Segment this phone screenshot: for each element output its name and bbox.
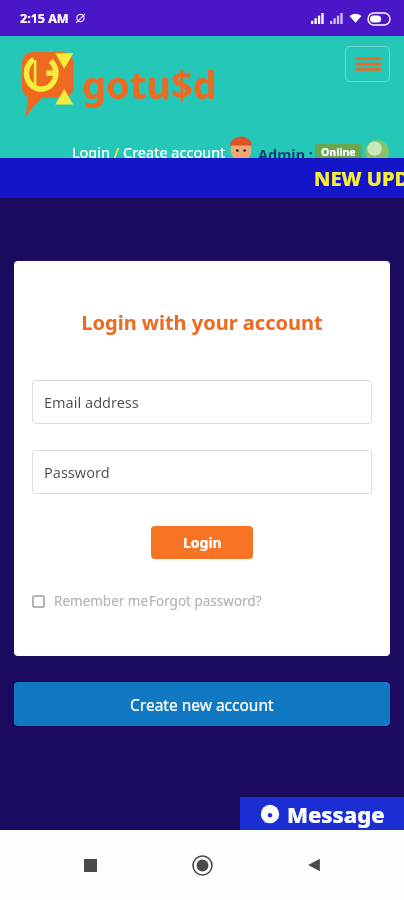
staticText: Message	[287, 799, 385, 829]
staticText: Remember me	[54, 592, 149, 610]
button[interactable]: Create new account	[14, 682, 390, 726]
button[interactable]: Create account	[123, 142, 226, 162]
staticText: Work time: 9:00 AM -11:00 PM	[227, 174, 381, 188]
button[interactable]: Menu	[345, 46, 390, 82]
staticText: Admin :	[258, 144, 313, 164]
staticText: Create new account	[130, 694, 274, 715]
staticText: Password	[44, 462, 110, 482]
staticText: /	[110, 142, 123, 162]
staticText: 2:15 AM	[20, 10, 69, 27]
staticText: Login with your account	[32, 309, 372, 336]
staticText: Login	[72, 142, 110, 162]
button[interactable]: Back	[294, 845, 334, 885]
staticText: gotu$d	[82, 58, 217, 110]
staticText: Email address	[44, 392, 139, 412]
button[interactable]: Recent apps	[70, 845, 110, 885]
button[interactable]: Message	[240, 797, 404, 830]
button[interactable]: Login	[72, 142, 110, 162]
staticText: Forgot password?	[149, 592, 262, 610]
button[interactable]: Password	[32, 450, 372, 494]
button[interactable]: Remember me checkbox	[32, 595, 45, 608]
button[interactable]: Email address	[32, 380, 372, 424]
staticText: Create account	[123, 142, 226, 162]
button[interactable]: Login	[151, 526, 253, 559]
button[interactable]: Home	[182, 845, 222, 885]
staticText: Online	[321, 145, 356, 159]
button[interactable]: Remember me	[54, 592, 149, 610]
staticText: Login	[183, 533, 222, 552]
staticText: NEW UPD	[314, 165, 404, 192]
button[interactable]: Forgot password?	[149, 592, 262, 610]
